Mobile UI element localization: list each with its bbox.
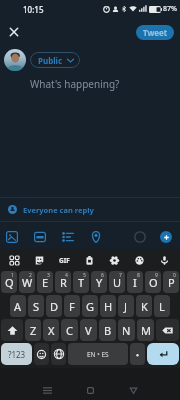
staticText: G [86, 299, 95, 314]
button[interactable]: U [109, 271, 125, 293]
button[interactable]: Location [89, 230, 102, 243]
button[interactable]: V [80, 319, 97, 341]
button[interactable]: Public [30, 52, 80, 68]
button[interactable]: Theme [133, 254, 146, 267]
button[interactable]: Close [3, 21, 25, 43]
button[interactable]: M [137, 319, 154, 341]
staticText: P [168, 275, 175, 290]
staticText: Z [30, 323, 37, 338]
button[interactable]: Shift [1, 319, 23, 341]
button[interactable]: J [118, 295, 134, 317]
button[interactable]: Everyone can reply [0, 198, 180, 221]
button[interactable]: H [100, 295, 116, 317]
button[interactable]: Clipboard [83, 254, 96, 267]
button[interactable]: Poll [61, 230, 74, 243]
button[interactable]: E [37, 271, 53, 293]
staticText: 8 [137, 272, 140, 279]
button[interactable]: K [136, 295, 152, 317]
staticText: Everyone can reply [23, 205, 94, 215]
button[interactable]: X [43, 319, 59, 341]
staticText: Q [5, 275, 14, 290]
staticText: 87% [163, 4, 177, 14]
staticText: 9 [155, 272, 158, 279]
staticText: K [141, 299, 148, 314]
button[interactable]: Backspace [156, 319, 179, 341]
staticText: C [66, 323, 73, 338]
button[interactable]: Period [130, 343, 145, 365]
button[interactable]: Y [91, 271, 107, 293]
button[interactable]: Language [51, 343, 66, 365]
button[interactable]: Settings [108, 254, 121, 267]
staticText: What's happening? [30, 77, 120, 91]
button[interactable]: A [10, 295, 26, 317]
staticText: T [78, 275, 85, 290]
staticText: 1 [11, 272, 14, 279]
button[interactable]: Voice input [158, 254, 171, 267]
button[interactable]: W [19, 271, 35, 293]
staticText: 2 [29, 272, 32, 279]
staticText: GIF [59, 256, 70, 265]
button[interactable]: GIF [33, 230, 46, 243]
staticText: F [69, 299, 75, 314]
staticText: U [113, 275, 122, 290]
staticText: 3 [47, 272, 50, 279]
staticText: O [149, 275, 158, 290]
staticText: Tweet [143, 27, 168, 38]
staticText: 10:15 [23, 4, 44, 15]
button[interactable]: I [127, 271, 143, 293]
button[interactable]: S [28, 295, 44, 317]
staticText: 4 [65, 272, 68, 279]
staticText: 5 [83, 272, 86, 279]
button[interactable]: C [61, 319, 78, 341]
staticText: I [133, 275, 137, 290]
staticText: Y [96, 275, 103, 290]
staticText: J [124, 299, 128, 314]
staticText: A [14, 299, 22, 314]
staticText: Public [38, 55, 63, 66]
staticText: H [104, 299, 113, 314]
button[interactable]: L [154, 295, 170, 317]
button[interactable]: D [46, 295, 62, 317]
button[interactable]: Tweet [136, 25, 174, 40]
button[interactable]: F [64, 295, 80, 317]
button[interactable]: Emoji [34, 343, 49, 365]
button[interactable]: Space [68, 343, 128, 365]
button[interactable]: Q [1, 271, 17, 293]
button[interactable]: Add tweet [160, 231, 172, 243]
staticText: S [33, 299, 40, 314]
button[interactable]: Z [25, 319, 41, 341]
staticText: N [122, 323, 131, 338]
button[interactable]: Recent apps [34, 377, 60, 400]
button[interactable]: R [55, 271, 71, 293]
button[interactable]: P [163, 271, 179, 293]
staticText: R [60, 275, 67, 290]
staticText: 0 [173, 272, 176, 279]
button[interactable]: GIF [58, 254, 71, 267]
staticText: D [50, 299, 59, 314]
button[interactable]: O [145, 271, 161, 293]
button[interactable]: Profile picture [4, 49, 26, 71]
button[interactable]: ?123 [1, 343, 32, 365]
button[interactable]: Apps [8, 254, 21, 267]
button[interactable]: G [82, 295, 98, 317]
staticText: 7 [119, 272, 122, 279]
button[interactable]: Stickers [33, 254, 46, 267]
staticText: E [42, 275, 49, 290]
staticText: X [48, 323, 55, 338]
staticText: M [141, 323, 151, 338]
button[interactable]: Home [77, 377, 103, 400]
button[interactable]: Character count [134, 231, 146, 243]
button[interactable]: B [99, 319, 116, 341]
button[interactable]: Back [120, 377, 146, 400]
staticText: V [85, 323, 92, 338]
staticText: B [104, 323, 112, 338]
staticText: ?123 [8, 349, 26, 360]
button[interactable]: N [118, 319, 135, 341]
button[interactable]: T [73, 271, 89, 293]
staticText: 6 [101, 272, 104, 279]
staticText: W [22, 275, 33, 290]
staticText: L [159, 299, 165, 314]
button[interactable]: Enter [147, 343, 179, 365]
staticText: EN • ES [87, 350, 109, 359]
button[interactable]: Media [5, 230, 18, 243]
